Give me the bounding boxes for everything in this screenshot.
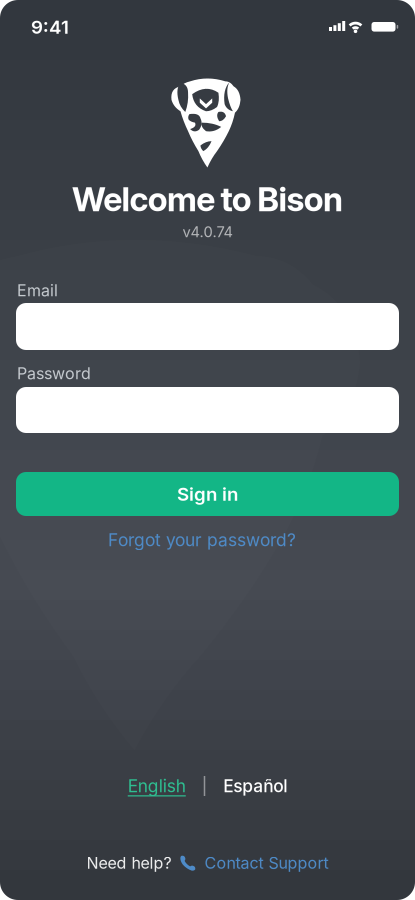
staticText: Email: [17, 281, 58, 300]
staticText: 9:41: [31, 16, 69, 38]
staticText: Español: [223, 776, 287, 796]
staticText: Sign in: [177, 483, 238, 505]
staticText: v4.0.74: [182, 223, 232, 241]
staticText: Welcome to Bison: [72, 179, 343, 219]
staticText: Need help?: [86, 854, 171, 872]
staticText: English: [128, 776, 186, 796]
staticText: Password: [17, 364, 91, 383]
staticText: Forgot your password?: [108, 530, 296, 550]
staticText: Contact Support: [204, 854, 328, 872]
